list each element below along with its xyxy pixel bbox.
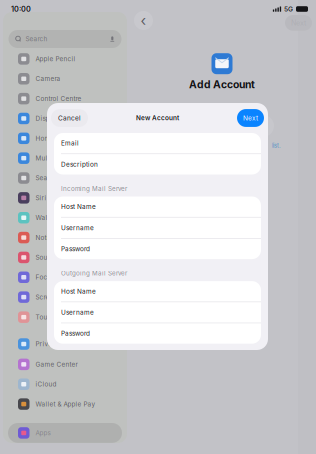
button[interactable]: Multitasking & Gestures — [8, 148, 122, 168]
staticText: Password — [61, 245, 90, 253]
staticText: Screen Time — [35, 293, 75, 301]
staticText: Host Name — [61, 203, 96, 210]
staticText: Privacy & Security — [35, 340, 95, 348]
button[interactable]: Back — [134, 11, 153, 30]
staticText: Touch ID & Passcode — [35, 313, 102, 321]
staticText: Cancel — [58, 114, 81, 122]
staticText: Game Center — [35, 360, 77, 368]
button[interactable]: Notifications — [8, 228, 122, 247]
staticText: Password — [61, 330, 90, 337]
staticText: Notifications — [35, 234, 75, 241]
button[interactable]: Camera — [8, 69, 122, 89]
button[interactable]: Next — [237, 109, 264, 127]
staticText: Outgoing Mail Server — [61, 269, 127, 277]
staticText: Description — [61, 160, 98, 168]
staticText: Email — [61, 139, 79, 147]
button[interactable]: Control Centre — [8, 89, 122, 109]
staticText: 10:00 — [11, 5, 31, 13]
staticText: Wallpaper — [35, 214, 67, 222]
staticText: Display & Brightness — [35, 115, 100, 122]
staticText: list. — [272, 142, 281, 149]
staticText: Siri — [35, 194, 46, 202]
staticText: Search — [35, 174, 57, 182]
staticText: Username — [61, 224, 94, 232]
staticText: Next — [243, 114, 258, 122]
staticText: Username — [61, 308, 94, 316]
staticText: Incoming Mail Server — [61, 185, 127, 192]
button[interactable]: Wallet & Apple Pay — [8, 394, 122, 414]
button[interactable]: Focus — [8, 267, 122, 287]
staticText: New Account — [136, 114, 179, 122]
button[interactable]: Display & Brightness — [8, 109, 122, 128]
button[interactable]: Next — [285, 15, 312, 31]
button[interactable]: Game Center — [8, 354, 122, 374]
button[interactable]: iCloud — [8, 374, 122, 394]
staticText: Host Name — [61, 287, 96, 295]
staticText: Home Screen & App Library — [35, 134, 111, 142]
button[interactable]: Cancel — [51, 109, 88, 127]
button[interactable]: Apple Pencil — [8, 49, 122, 69]
staticText: Control Centre — [35, 95, 81, 102]
staticText: 5G — [284, 5, 293, 13]
button[interactable]: Apps — [8, 423, 122, 443]
button[interactable]: Home Screen & App Library — [8, 128, 122, 148]
staticText: Multitasking & Gestures — [35, 154, 109, 162]
staticText: Sounds — [35, 254, 58, 261]
staticText: iCloud — [35, 380, 56, 388]
button[interactable]: Wallpaper — [8, 208, 122, 228]
button[interactable]: Privacy & Security — [8, 334, 122, 354]
staticText: ‹ — [140, 12, 146, 29]
button[interactable]: Siri — [8, 188, 122, 208]
button[interactable]: Search — [8, 168, 122, 188]
button[interactable]: Sounds — [8, 247, 122, 267]
staticText: Add Account — [189, 78, 255, 91]
staticText: Focus — [35, 273, 54, 281]
staticText: Search — [25, 35, 47, 43]
staticText: Wallet & Apple Pay — [35, 400, 95, 408]
staticText: Apps — [35, 429, 50, 437]
button[interactable]: Touch ID & Passcode — [8, 307, 122, 327]
button[interactable]: Screen Time — [8, 287, 122, 307]
staticText: Camera — [35, 75, 60, 83]
staticText: Apple Pencil — [35, 55, 75, 63]
